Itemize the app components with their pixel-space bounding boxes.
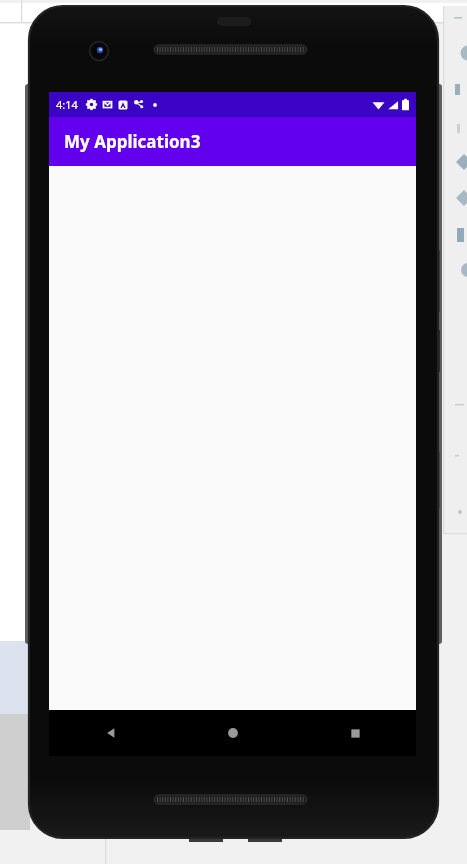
staticText: 4:14 [56,97,78,112]
button[interactable]: Recent apps [294,710,416,756]
button[interactable]: My Application3 [49,117,416,166]
button[interactable]: Home [172,710,294,756]
button[interactable]: Back [49,710,172,756]
staticText: My Application3 [64,130,201,153]
